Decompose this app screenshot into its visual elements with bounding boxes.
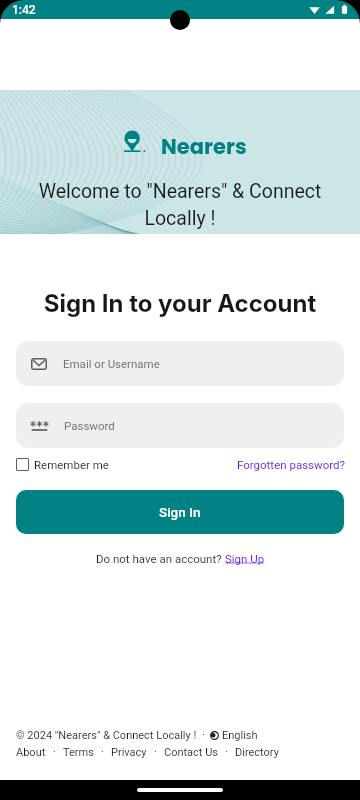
staticText: Terms — [63, 746, 94, 759]
staticText: Sign In to your Account — [0, 289, 360, 318]
staticText: Sign In — [159, 504, 201, 520]
staticText: 1:42 — [12, 3, 36, 17]
staticText: About — [16, 746, 46, 759]
staticText: Do not have an account? — [96, 552, 225, 565]
staticText: © 2024 "Nearers" & Connect Locally ! — [16, 729, 197, 742]
button[interactable]: Sign Up — [225, 552, 265, 565]
staticText: Welcome to "Nearers" & Connect Locally ! — [0, 180, 360, 230]
staticText: Directory — [235, 746, 279, 759]
staticText: Contact Us — [164, 746, 218, 759]
button[interactable]: Password — [16, 403, 344, 448]
staticText: Remember me — [34, 458, 109, 471]
button[interactable]: Forgotten password? — [237, 458, 345, 471]
button[interactable]: About — [16, 746, 46, 759]
staticText: Nearers — [161, 132, 247, 161]
staticText: Privacy — [111, 746, 147, 759]
staticText: · — [154, 746, 157, 759]
button[interactable]: Sign In — [16, 490, 344, 534]
staticText: Email or Username — [63, 357, 160, 370]
staticText: · — [101, 746, 104, 759]
other: Language — [210, 731, 219, 740]
staticText: Forgotten password? — [237, 458, 345, 471]
staticText: · — [53, 746, 56, 759]
button[interactable]: Terms — [63, 746, 94, 759]
button[interactable]: Contact Us — [164, 746, 218, 759]
button[interactable]: Directory — [235, 746, 279, 759]
staticText: · — [225, 746, 228, 759]
staticText: · — [202, 729, 205, 742]
staticText: Password — [64, 419, 115, 432]
staticText: Sign Up — [225, 552, 265, 565]
staticText: English — [222, 729, 258, 742]
button[interactable]: Email or Username — [16, 341, 344, 386]
button[interactable]: Remember me — [16, 458, 109, 471]
button[interactable]: Privacy — [111, 746, 147, 759]
